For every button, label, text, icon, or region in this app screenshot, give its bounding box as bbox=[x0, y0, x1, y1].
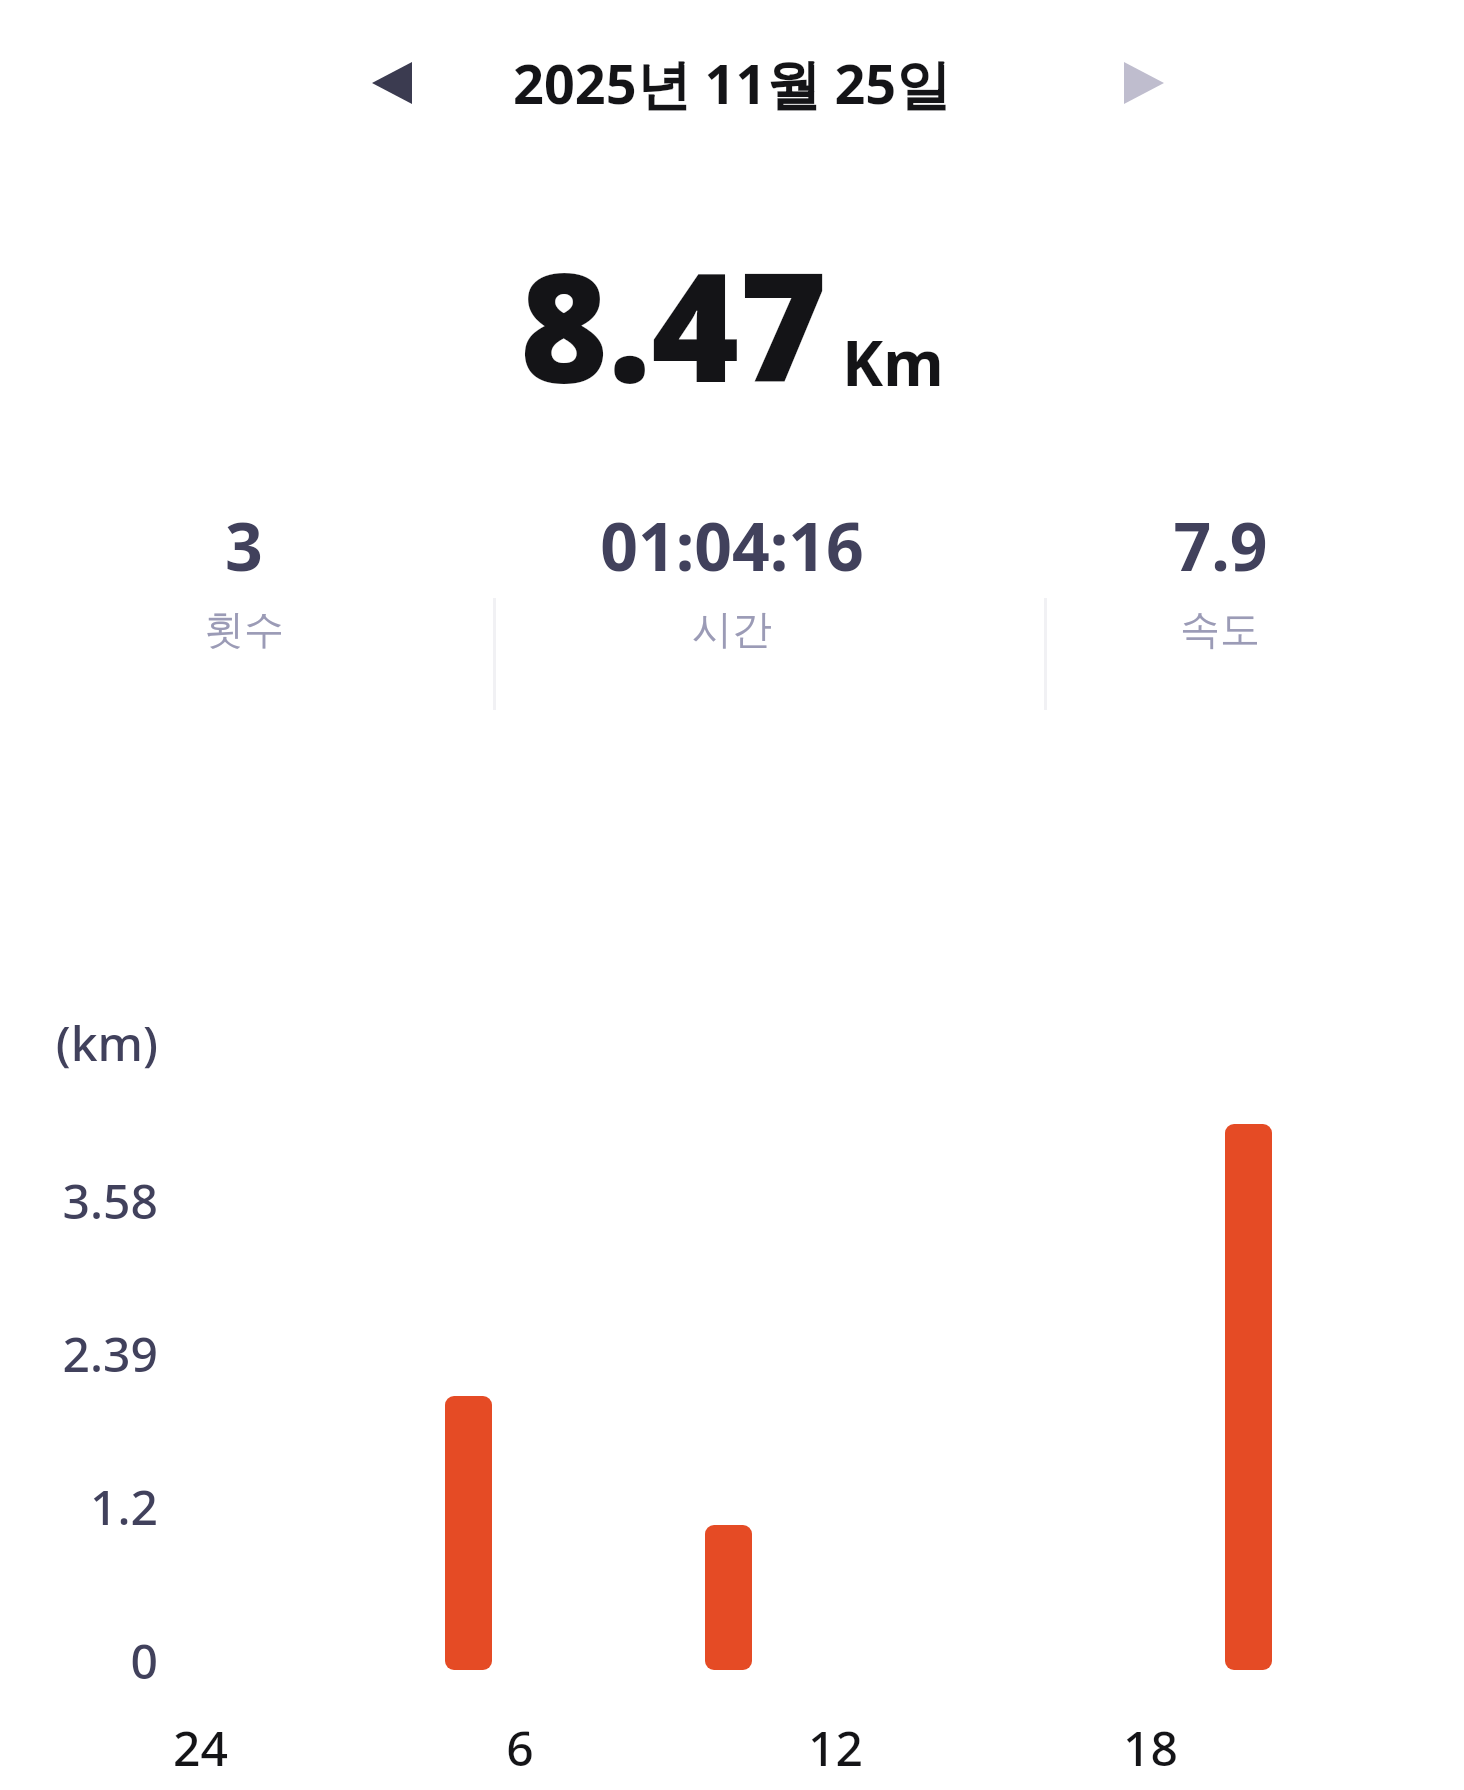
staticText: 6 bbox=[506, 1715, 534, 1780]
staticText: 0 bbox=[130, 1628, 158, 1693]
button[interactable]: Next day bbox=[1092, 37, 1196, 129]
staticText: 3 bbox=[225, 500, 263, 590]
staticText: 2025년 11월 25일 bbox=[513, 46, 951, 120]
staticText: 18 bbox=[1123, 1715, 1178, 1780]
staticText: 2.39 bbox=[62, 1321, 158, 1386]
staticText: 8.47 bbox=[520, 222, 828, 426]
staticText: 12 bbox=[808, 1715, 863, 1780]
staticText: 1.2 bbox=[90, 1474, 158, 1539]
staticText: 24 bbox=[173, 1715, 228, 1780]
staticText: 속도 bbox=[1180, 604, 1260, 654]
staticText: 01:04:16 bbox=[600, 500, 864, 590]
button[interactable]: 3 bbox=[0, 500, 488, 654]
button[interactable]: Previous day bbox=[340, 37, 444, 129]
staticText: 3.58 bbox=[62, 1168, 158, 1233]
button[interactable]: 01:04:16 bbox=[488, 500, 976, 654]
button[interactable]: 7.9 bbox=[976, 500, 1464, 654]
staticText: 7.9 bbox=[1173, 500, 1268, 590]
staticText: (km) bbox=[55, 1010, 158, 1075]
staticText: 시간 bbox=[692, 604, 772, 654]
staticText: Km bbox=[842, 320, 944, 404]
staticText: 횟수 bbox=[204, 604, 284, 654]
